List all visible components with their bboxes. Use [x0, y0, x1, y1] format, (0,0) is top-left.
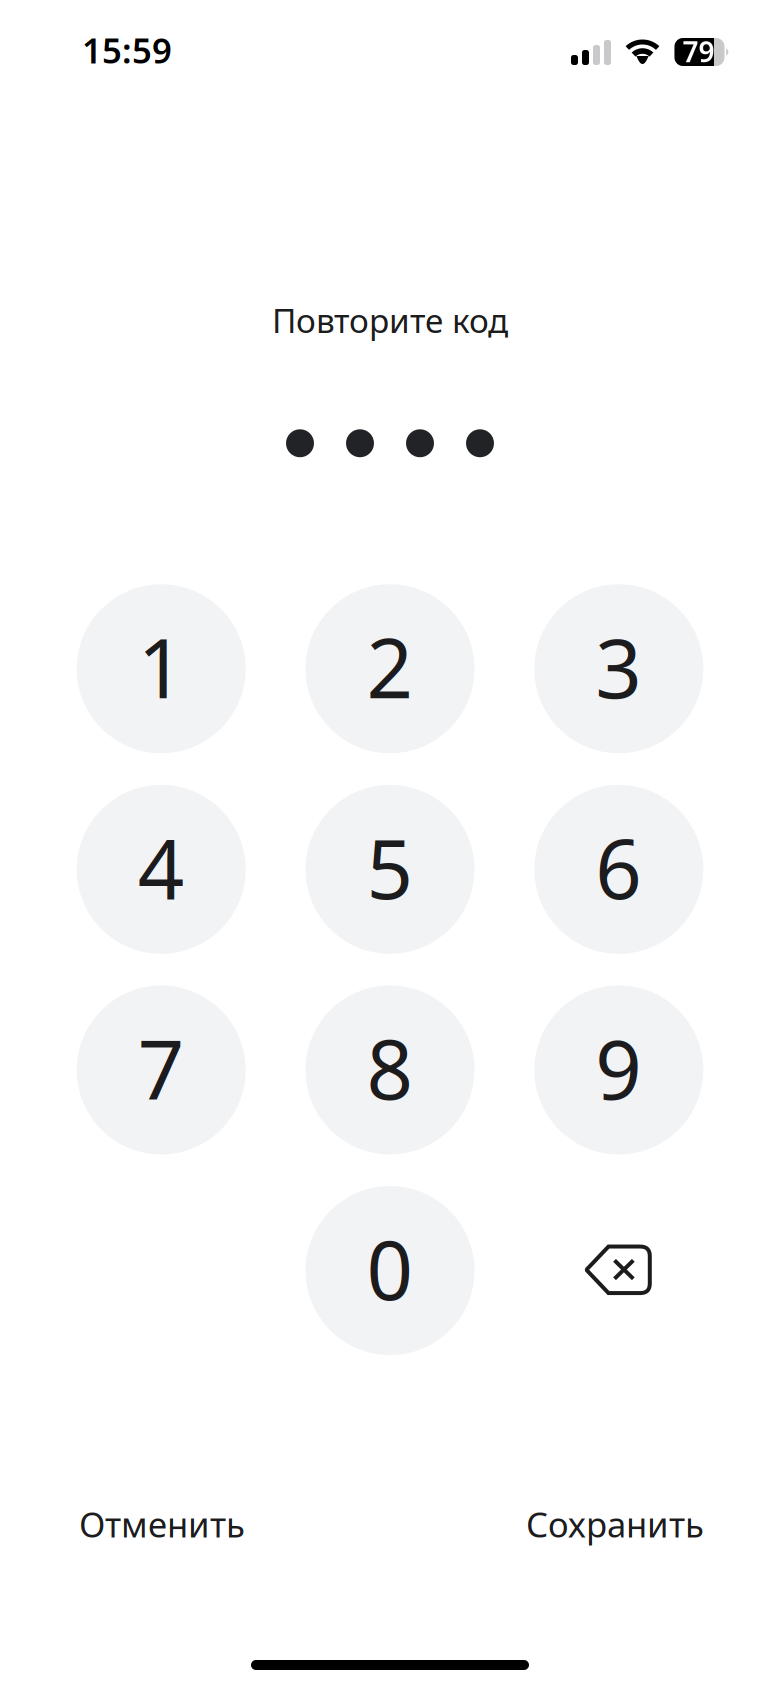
- staticText: 0: [366, 1215, 413, 1323]
- button[interactable]: Сохранить: [526, 1501, 704, 1547]
- button[interactable]: Отменить: [79, 1501, 245, 1547]
- button[interactable]: 4: [77, 785, 246, 954]
- button[interactable]: 7: [77, 985, 246, 1154]
- button[interactable]: 6: [534, 785, 703, 954]
- staticText: 7: [138, 1014, 185, 1122]
- staticText: 15:59: [82, 27, 172, 73]
- button[interactable]: 1: [77, 584, 246, 753]
- staticText: 1: [138, 613, 185, 721]
- button[interactable]: 9: [534, 985, 703, 1154]
- staticText: 5: [366, 813, 413, 921]
- button[interactable]: Удалить: [534, 1186, 703, 1355]
- staticText: Повторите код: [272, 298, 508, 342]
- staticText: 4: [138, 813, 185, 921]
- staticText: Отменить: [79, 1501, 245, 1547]
- staticText: 6: [595, 813, 642, 921]
- staticText: 9: [595, 1014, 642, 1122]
- button[interactable]: 2: [305, 584, 474, 753]
- staticText: 8: [366, 1014, 413, 1122]
- staticText: 2: [366, 613, 413, 721]
- button[interactable]: 0: [305, 1186, 474, 1355]
- staticText: Сохранить: [526, 1501, 704, 1547]
- button[interactable]: 3: [534, 584, 703, 753]
- button[interactable]: 8: [305, 985, 474, 1154]
- button[interactable]: 5: [305, 785, 474, 954]
- staticText: 3: [595, 613, 642, 721]
- staticText: 79: [682, 33, 714, 70]
